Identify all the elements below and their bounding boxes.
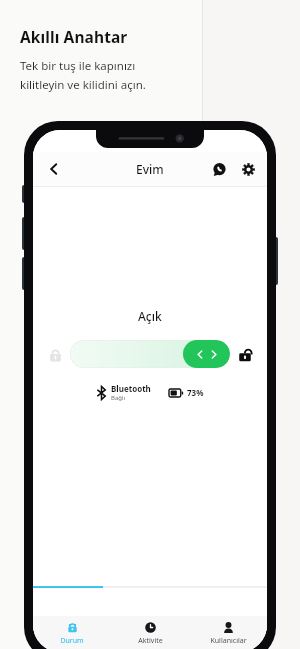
staticText: 73% bbox=[187, 387, 204, 398]
button[interactable]: Call support bbox=[207, 157, 231, 181]
staticText: Tek bir tuş ile kapınızı bbox=[20, 58, 136, 74]
staticText: kilitleyin ve kilidini açın. bbox=[20, 77, 146, 93]
staticText: Bağlı bbox=[111, 394, 126, 402]
staticText: Kullanıcılar bbox=[210, 636, 247, 646]
button[interactable]: Slide to lock bbox=[70, 340, 230, 368]
button[interactable]: Back bbox=[39, 154, 69, 184]
staticText: Akıllı Anahtar bbox=[20, 26, 128, 47]
button[interactable]: Durum bbox=[33, 616, 111, 649]
button[interactable]: Kullanıcılar bbox=[189, 616, 267, 649]
staticText: Durum bbox=[60, 636, 84, 646]
staticText: Aktivite bbox=[138, 636, 163, 646]
button[interactable]: Aktivite bbox=[111, 616, 189, 649]
staticText: Evim bbox=[136, 161, 164, 177]
staticText: Bluetooth bbox=[111, 383, 151, 394]
button[interactable]: Settings bbox=[236, 157, 260, 181]
staticText: Açık bbox=[138, 308, 162, 324]
